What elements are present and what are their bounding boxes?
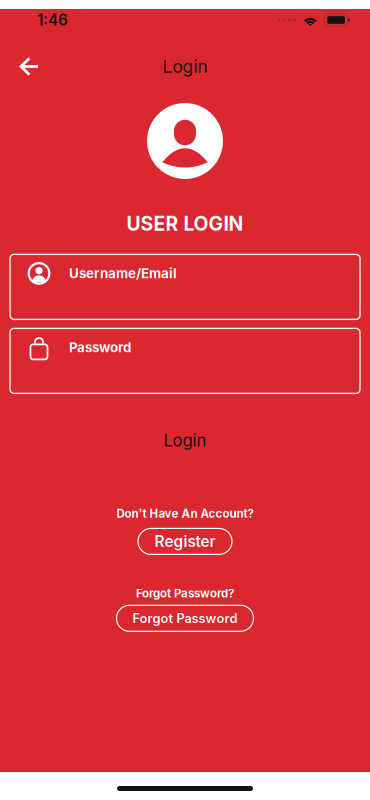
- staticText: Forgot Password?: [136, 586, 234, 600]
- staticText: Forgot Password: [132, 611, 237, 626]
- staticText: Login: [162, 56, 207, 77]
- staticText: 1:46: [37, 11, 68, 29]
- staticText: Login: [163, 430, 206, 451]
- staticText: Password: [69, 339, 131, 355]
- button[interactable]: Login: [0, 419, 370, 462]
- button[interactable]: Back: [0, 45, 52, 88]
- staticText: USER LOGIN: [126, 212, 243, 235]
- staticText: Register: [154, 532, 215, 551]
- button[interactable]: Password: [10, 328, 360, 393]
- button[interactable]: Username/Email: [10, 254, 360, 319]
- staticText: Username/Email: [69, 265, 177, 281]
- button[interactable]: Register: [138, 528, 232, 554]
- staticText: Don't Have An Account?: [116, 507, 253, 520]
- button[interactable]: Forgot Password: [116, 605, 253, 631]
